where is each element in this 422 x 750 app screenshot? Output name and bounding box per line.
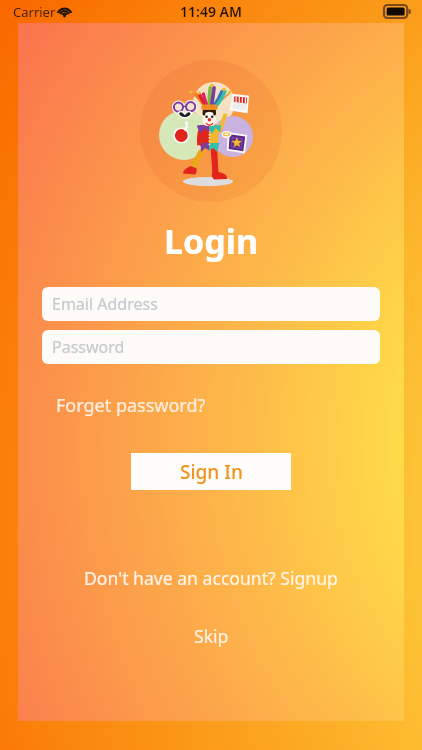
button[interactable]: Sign In xyxy=(131,453,291,490)
staticText: Don't have an account? Signup xyxy=(84,566,338,590)
staticText: Skip xyxy=(194,624,229,648)
staticText: Carrier xyxy=(13,3,56,21)
staticText: Forget password? xyxy=(56,393,206,418)
button[interactable]: Email Address xyxy=(42,287,380,321)
staticText: Email Address xyxy=(52,293,158,315)
other: Wi-Fi xyxy=(57,5,72,17)
staticText: 11:49 AM xyxy=(0,2,422,21)
button[interactable]: Skip xyxy=(194,624,229,648)
button[interactable]: Password xyxy=(42,330,380,364)
staticText: Password xyxy=(52,336,125,358)
staticText: Login xyxy=(164,218,259,264)
button[interactable]: Don't have an account? Signup xyxy=(84,566,338,590)
button[interactable]: Forget password? xyxy=(56,393,206,418)
other: Battery xyxy=(384,5,411,18)
staticText: Sign In xyxy=(180,459,243,485)
